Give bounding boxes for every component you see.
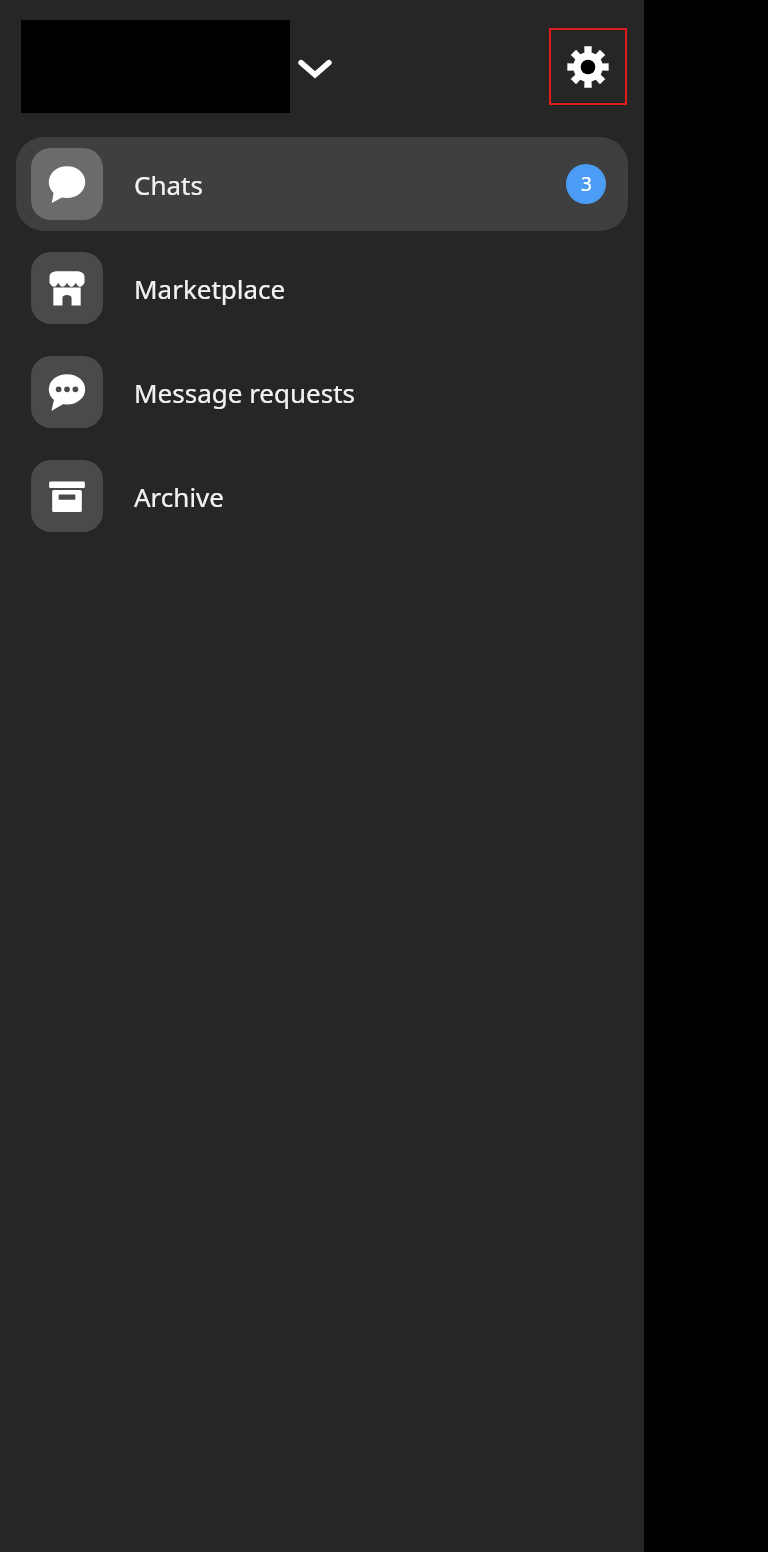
staticText: Chats <box>134 167 203 202</box>
button[interactable]: Message requests <box>16 345 628 439</box>
button[interactable]: Expand account switcher <box>292 45 338 91</box>
staticText: Marketplace <box>134 271 286 306</box>
button[interactable]: Archive <box>16 449 628 543</box>
staticText: Message requests <box>134 375 356 410</box>
staticText: 3 <box>581 171 592 197</box>
button[interactable]: Settings <box>549 28 627 105</box>
button[interactable]: Chats <box>16 137 628 231</box>
staticText: Archive <box>134 479 224 514</box>
button[interactable]: Marketplace <box>16 241 628 335</box>
